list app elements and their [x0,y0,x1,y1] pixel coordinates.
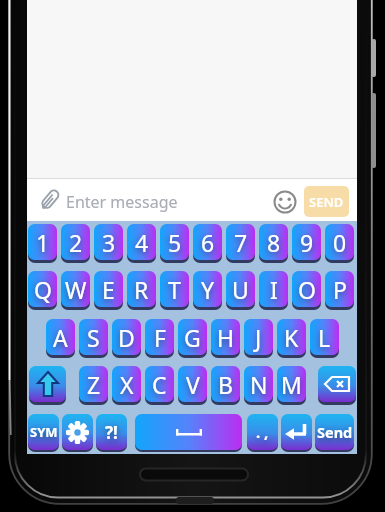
button[interactable]: J [244,319,273,355]
staticText: V [186,369,200,400]
staticText: X [120,369,134,400]
staticText: S [87,322,100,353]
staticText: E [102,274,115,305]
button[interactable]: ?! [96,414,127,450]
staticText: A [53,322,68,353]
button[interactable]: O [292,271,321,307]
button[interactable]: W [61,271,90,307]
staticText: . , [256,422,269,442]
button[interactable] [135,414,242,450]
staticText: O [298,274,316,305]
button[interactable] [281,414,312,450]
button[interactable]: P [325,271,354,307]
staticText: Send [317,422,353,442]
button[interactable]: V [178,366,207,402]
staticText: M [281,369,302,400]
staticText: P [333,274,347,305]
button[interactable]: K [277,319,306,355]
button[interactable]: 7 [226,224,255,260]
button[interactable]: Send [315,414,354,450]
staticText: N [250,369,268,400]
button[interactable]: G [178,319,207,355]
staticText: R [134,274,149,305]
button[interactable]: N [244,366,273,402]
button[interactable]: 9 [292,224,321,260]
button[interactable]: Q [28,271,57,307]
button[interactable]: H [211,319,240,355]
staticText: W [65,274,87,305]
staticText: T [168,274,181,305]
button[interactable]: E [94,271,123,307]
button[interactable] [29,366,66,402]
button[interactable]: A [46,319,75,355]
staticText: H [217,322,235,353]
button[interactable]: M [277,366,306,402]
staticText: D [118,322,135,353]
button[interactable]: Y [193,271,222,307]
button[interactable]: SEND [304,186,349,217]
staticText: Q [34,274,52,305]
button[interactable]: 0 [325,224,354,260]
button[interactable]: L [310,319,339,355]
button[interactable]: 2 [61,224,90,260]
staticText: 0 [333,227,347,258]
staticText: Y [201,274,215,305]
button[interactable]: C [145,366,174,402]
button[interactable]: T [160,271,189,307]
button[interactable]: SYM [28,414,59,450]
button[interactable] [318,366,356,402]
staticText: ?! [105,421,118,444]
staticText: 1 [36,227,50,258]
staticText: 3 [102,227,116,258]
button[interactable]: S [79,319,108,355]
staticText: SEND [309,193,344,211]
button[interactable]: U [226,271,255,307]
staticText: U [232,274,249,305]
button[interactable]: 8 [259,224,288,260]
staticText: 6 [201,227,215,258]
button[interactable]: Z [79,366,108,402]
staticText: F [154,322,166,353]
staticText: 2 [69,227,83,258]
button[interactable]: X [112,366,141,402]
button[interactable]: D [112,319,141,355]
staticText: I [270,274,278,305]
button[interactable]: F [145,319,174,355]
staticText: Enter message [66,191,178,213]
staticText: K [284,322,299,353]
staticText: L [318,322,331,353]
staticText: C [152,369,167,400]
button[interactable]: 6 [193,224,222,260]
staticText: J [255,322,262,353]
staticText: Z [87,369,101,400]
staticText: SYM [30,423,58,441]
staticText: 9 [300,227,314,258]
button[interactable]: . , [247,414,278,450]
button[interactable]: 5 [160,224,189,260]
staticText: B [218,369,233,400]
button[interactable]: B [211,366,240,402]
staticText: 5 [168,227,182,258]
button[interactable]: I [259,271,288,307]
staticText: 8 [267,227,281,258]
button[interactable]: 1 [28,224,57,260]
button[interactable]: R [127,271,156,307]
button[interactable]: 3 [94,224,123,260]
button[interactable] [62,414,93,450]
staticText: 7 [234,227,248,258]
staticText: G [184,322,201,353]
staticText: 4 [135,227,149,258]
button[interactable]: 4 [127,224,156,260]
